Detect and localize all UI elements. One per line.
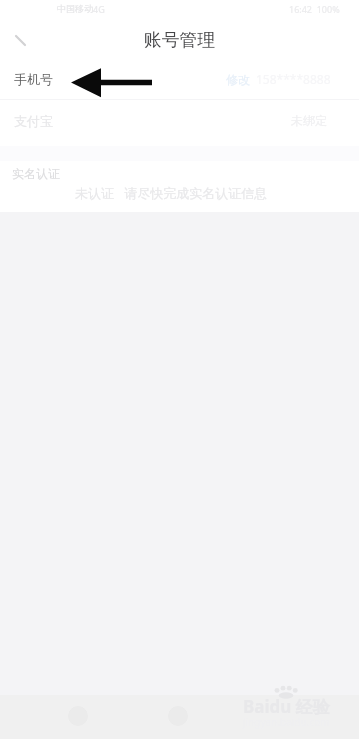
staticText: 实名认证	[12, 166, 60, 181]
staticText: Baidu 经验	[243, 695, 330, 718]
staticText: 未认证 请尽快完成实名认证信息	[75, 184, 268, 202]
staticText: 修改	[226, 72, 250, 87]
button[interactable]: 手机号	[0, 58, 359, 100]
staticText: 支付宝	[14, 113, 53, 129]
staticText: 中国移动	[57, 3, 93, 14]
button[interactable]: Back	[0, 22, 42, 58]
staticText: 158****8888	[256, 71, 331, 87]
staticText: 未绑定	[291, 113, 327, 128]
staticText: 16:42 100%	[289, 3, 340, 15]
staticText: 4G	[93, 3, 105, 15]
staticText: 账号管理	[144, 29, 216, 51]
staticText: 手机号	[14, 71, 53, 87]
button[interactable]: 实名认证	[0, 160, 359, 212]
